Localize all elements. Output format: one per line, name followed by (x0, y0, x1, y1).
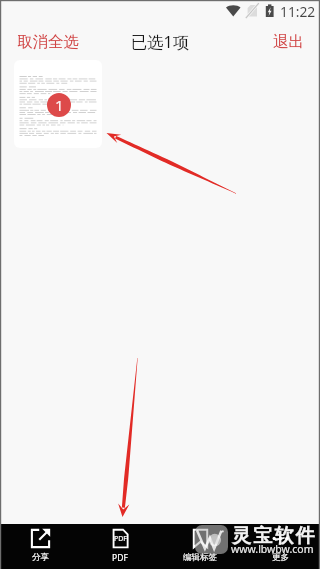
button[interactable]: Share (0, 524, 80, 569)
button[interactable]: 1 (14, 60, 102, 148)
button[interactable]: PDF (80, 524, 160, 569)
staticText: 11:22 (280, 2, 316, 21)
button[interactable]: 退出 (263, 26, 320, 58)
staticText: 更多 (272, 552, 289, 563)
staticText: www.lbwbw.com (231, 542, 314, 556)
staticText: PDF (114, 534, 127, 544)
staticText: 取消全选 (17, 32, 79, 52)
staticText: 编辑标签 (183, 552, 217, 563)
button[interactable]: 取消全选 (0, 26, 89, 58)
staticText: PDF (112, 552, 128, 564)
button[interactable]: More (240, 524, 320, 569)
staticText: 灵宝软件 (232, 524, 317, 548)
staticText: 已选1项 (131, 31, 189, 53)
button[interactable]: Edit tags (160, 524, 240, 569)
staticText: 1 (55, 95, 64, 115)
staticText: 分享 (32, 552, 49, 563)
staticText: 退出 (273, 32, 304, 52)
